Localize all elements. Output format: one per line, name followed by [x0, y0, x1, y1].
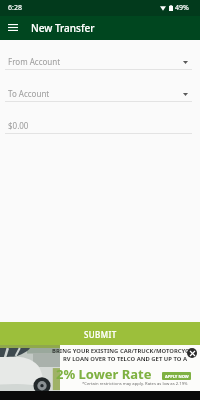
button[interactable]: APPLY NOW [162, 372, 191, 380]
staticText: SUBMIT [84, 329, 117, 340]
staticText: *Certain restrictions may apply. Rates a… [82, 381, 188, 387]
staticText: To Account [8, 88, 50, 99]
staticText: BRING YOUR EXISTING CAR/TRUCK/MOTORCYCLE… [52, 347, 194, 363]
button[interactable]: To Account [0, 70, 200, 102]
staticText: From Account [8, 56, 61, 67]
staticText: 2% Lower Rate [56, 365, 152, 383]
staticText: $0.00 [8, 120, 29, 131]
staticText: 49% [175, 3, 189, 13]
button[interactable]: From Account [0, 40, 200, 70]
staticText: New Transfer [31, 21, 95, 35]
button[interactable]: Menu [3, 17, 23, 37]
button[interactable]: $0.00 [0, 102, 200, 134]
button[interactable]: Close ad [187, 348, 197, 358]
staticText: 6:28 [8, 3, 22, 13]
staticText: APPLY NOW [165, 374, 189, 379]
button[interactable]: SUBMIT [0, 322, 200, 345]
